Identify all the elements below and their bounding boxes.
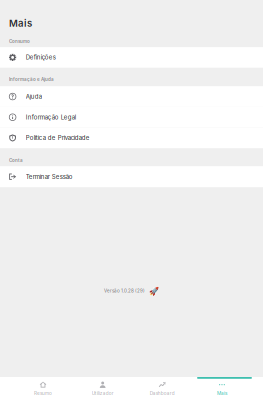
staticText: Informação e Ajuda — [9, 77, 54, 82]
staticText: 🚀 — [149, 286, 159, 296]
button[interactable]: Utilizador — [73, 377, 133, 400]
staticText: Terminar Sessão — [26, 173, 73, 180]
button[interactable]: Terminar Sessão — [0, 166, 263, 187]
staticText: Mais — [9, 17, 32, 29]
staticText: Resumo — [34, 391, 52, 396]
staticText: Mais — [217, 391, 227, 396]
button[interactable]: Dashboard — [132, 377, 192, 400]
button[interactable]: Resumo — [13, 377, 73, 400]
staticText: Política de Privacidade — [26, 134, 90, 141]
staticText: Definições — [26, 54, 56, 61]
staticText: Conta — [9, 158, 23, 163]
button[interactable]: Política de Privacidade — [0, 128, 263, 148]
staticText: Versão 1.0.28 (29) — [104, 288, 145, 294]
button[interactable]: Informação Legal — [0, 107, 263, 128]
button[interactable]: Definições — [0, 47, 263, 68]
button[interactable]: Ajuda — [0, 86, 263, 107]
staticText: Consumo — [9, 39, 30, 44]
button[interactable]: Mais — [192, 377, 252, 400]
staticText: Ajuda — [26, 93, 42, 100]
staticText: Dashboard — [150, 391, 175, 396]
staticText: Utilizador — [92, 391, 114, 396]
staticText: Informação Legal — [26, 114, 76, 121]
